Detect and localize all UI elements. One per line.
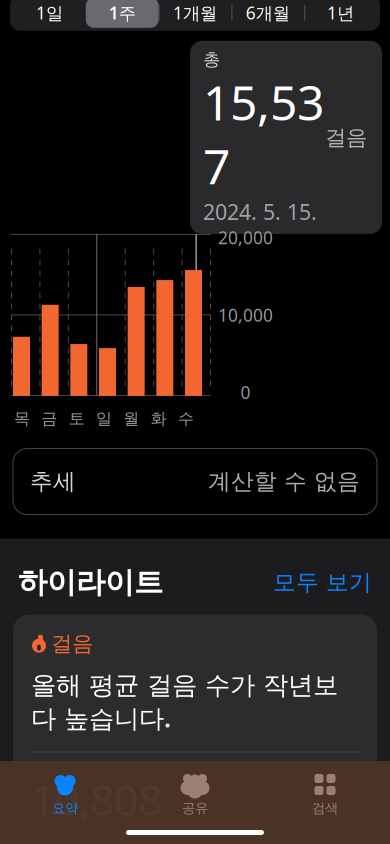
staticText: 걸음: [164, 789, 204, 814]
button[interactable]: 6개월: [231, 0, 304, 28]
staticText: 모두 보기: [273, 569, 372, 596]
button[interactable]: 추세: [13, 449, 377, 515]
staticText: 토: [69, 409, 85, 429]
staticText: 10,808: [31, 770, 162, 827]
staticText: 15,537: [203, 70, 324, 198]
staticText: 1년: [327, 1, 354, 24]
staticText: 계산할 수 없음: [208, 468, 360, 495]
staticText: 요약: [52, 800, 78, 816]
button[interactable]: 1개월: [159, 0, 231, 28]
staticText: 걸음: [51, 631, 93, 657]
staticText: 총: [203, 49, 220, 70]
staticText: 추세: [30, 468, 76, 495]
button[interactable]: 1년: [304, 0, 377, 28]
button[interactable]: 걸음: [13, 615, 377, 843]
button[interactable]: 모두 보기: [263, 565, 372, 600]
staticText: 월: [123, 409, 139, 429]
staticText: 20,000: [218, 226, 273, 249]
staticText: 1일: [36, 1, 63, 24]
button[interactable]: 1주: [86, 0, 159, 28]
button[interactable]: 검색: [260, 770, 390, 818]
staticText: 걸음: [325, 125, 367, 151]
staticText: 2024. 5. 15.: [203, 198, 317, 226]
staticText: 10,000: [218, 303, 273, 326]
button[interactable]: 1일: [13, 0, 86, 28]
staticText: 수: [178, 409, 194, 429]
staticText: 공유: [182, 800, 208, 816]
staticText: 1개월: [173, 1, 217, 24]
button[interactable]: 공유: [130, 770, 260, 818]
staticText: 하이라이트: [18, 565, 163, 601]
staticText: 1주: [109, 1, 136, 24]
staticText: 올해 평균 걸음 수가 작년보다 높습니다.: [31, 670, 338, 735]
staticText: 화: [151, 409, 167, 429]
button[interactable]: 요약: [0, 770, 130, 818]
staticText: 목: [14, 409, 30, 429]
staticText: 0: [240, 381, 250, 404]
staticText: 검색: [312, 800, 338, 816]
staticText: 금: [41, 409, 57, 429]
staticText: 일: [96, 409, 112, 429]
staticText: 6개월: [246, 1, 290, 24]
